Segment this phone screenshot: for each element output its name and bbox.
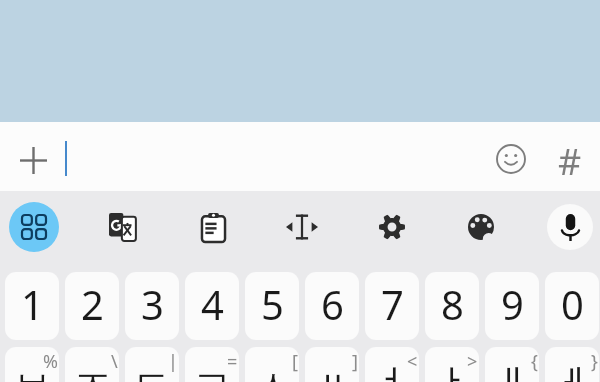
button[interactable]: Move cursor xyxy=(262,191,342,271)
button[interactable]: ㄷ xyxy=(125,347,179,382)
staticText: ㅕ xyxy=(372,360,413,382)
button[interactable]: 0 xyxy=(545,272,599,340)
button[interactable]: Settings xyxy=(352,191,432,271)
staticText: ㅈ xyxy=(72,360,113,382)
staticText: # xyxy=(558,137,582,181)
staticText: } xyxy=(591,349,598,374)
staticText: ㅐ xyxy=(492,360,533,382)
staticText: > xyxy=(467,349,478,374)
staticText: = xyxy=(227,349,238,374)
button[interactable]: 9 xyxy=(485,272,539,340)
button[interactable]: Translate xyxy=(83,191,163,271)
staticText: \ xyxy=(111,349,118,374)
staticText: ㅅ xyxy=(252,360,293,382)
button[interactable]: ㅈ xyxy=(65,347,119,382)
staticText: { xyxy=(531,349,538,374)
staticText: 8 xyxy=(441,277,464,331)
staticText: ㅑ xyxy=(432,360,473,382)
staticText: ㅔ xyxy=(552,360,593,382)
staticText: 7 xyxy=(381,277,404,331)
staticText: % xyxy=(43,349,58,374)
button[interactable]: ㅕ xyxy=(365,347,419,382)
button[interactable]: ㅔ xyxy=(545,347,599,382)
staticText: < xyxy=(407,349,418,374)
button[interactable]: ㅐ xyxy=(485,347,539,382)
staticText: 3 xyxy=(141,277,164,331)
staticText: [ xyxy=(292,349,298,374)
button[interactable]: 8 xyxy=(425,272,479,340)
button[interactable]: Clipboard xyxy=(173,191,253,271)
button[interactable]: 3 xyxy=(125,272,179,340)
staticText: ㄷ xyxy=(132,360,173,382)
button[interactable]: Hashtag xyxy=(548,137,592,181)
staticText: | xyxy=(168,349,178,374)
button[interactable]: ㅂ xyxy=(5,347,59,382)
staticText: ㅂ xyxy=(12,360,53,382)
button[interactable]: Add attachment xyxy=(13,140,53,180)
button[interactable]: 4 xyxy=(185,272,239,340)
button[interactable]: Emoji xyxy=(489,137,533,181)
button[interactable]: 1 xyxy=(5,272,59,340)
button[interactable]: 2 xyxy=(65,272,119,340)
button[interactable]: Voice input xyxy=(530,191,600,271)
button[interactable]: Themes xyxy=(441,191,521,271)
staticText: 4 xyxy=(201,277,224,331)
staticText: 6 xyxy=(321,277,344,331)
button[interactable]: ㅑ xyxy=(425,347,479,382)
staticText: ] xyxy=(352,349,358,374)
staticText: 0 xyxy=(561,277,584,331)
staticText: ㅛ xyxy=(312,347,353,382)
staticText: ㄱ xyxy=(192,360,233,382)
staticText: 9 xyxy=(501,277,524,331)
staticText: 2 xyxy=(81,277,104,331)
button[interactable]: ㄱ xyxy=(185,347,239,382)
button[interactable]: ㅅ xyxy=(245,347,299,382)
button[interactable]: Apps xyxy=(0,191,74,271)
staticText: 5 xyxy=(261,277,284,331)
button[interactable]: 5 xyxy=(245,272,299,340)
staticText: 1 xyxy=(21,277,44,331)
button[interactable]: ㅛ xyxy=(305,347,359,382)
button[interactable]: 6 xyxy=(305,272,359,340)
button[interactable]: 7 xyxy=(365,272,419,340)
